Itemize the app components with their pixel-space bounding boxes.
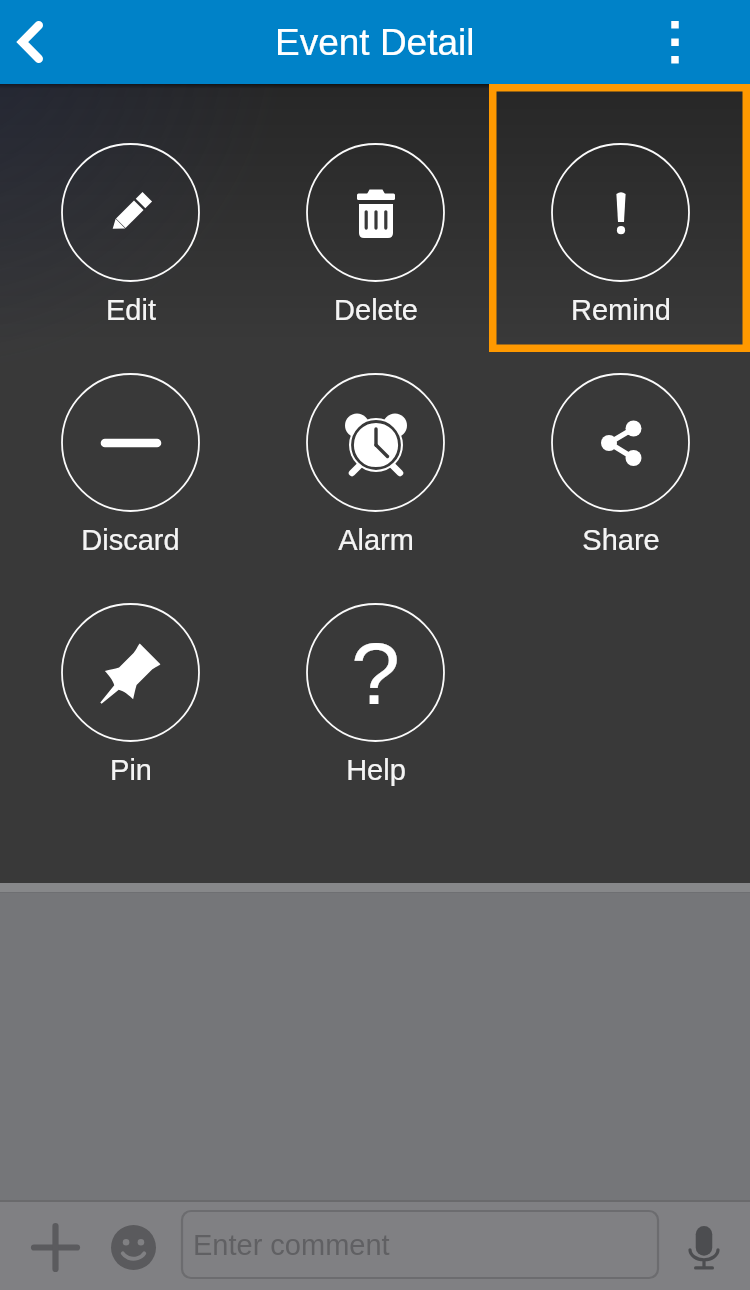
staticText: Remind <box>571 294 671 326</box>
staticText: Delete <box>334 294 418 326</box>
button[interactable]: ? <box>253 603 497 813</box>
staticText: Pin <box>110 754 152 786</box>
button[interactable]: Discard <box>8 373 252 583</box>
staticText: Enter comment <box>193 1229 390 1261</box>
button[interactable]: Voice input <box>660 1203 748 1290</box>
button[interactable]: Delete <box>253 143 497 353</box>
button[interactable]: Add attachment <box>11 1203 99 1290</box>
button[interactable]: Alarm <box>253 373 497 583</box>
staticText: Share <box>582 524 660 556</box>
button[interactable]: Enter comment <box>181 1210 659 1279</box>
staticText: Edit <box>106 294 156 326</box>
button[interactable] <box>489 84 750 352</box>
button[interactable]: Edit <box>8 143 252 353</box>
button[interactable]: Remind <box>498 143 742 353</box>
button[interactable]: More options <box>599 0 750 84</box>
staticText: Event Detail <box>275 22 475 63</box>
staticText: Alarm <box>338 524 414 556</box>
staticText: Help <box>346 754 406 786</box>
staticText: ? <box>351 624 400 722</box>
button[interactable]: Insert emoji <box>89 1203 177 1290</box>
button[interactable]: Pin <box>8 603 252 813</box>
button[interactable]: Share <box>498 373 742 583</box>
staticText: Discard <box>81 524 180 556</box>
button[interactable]: Back <box>0 0 60 84</box>
